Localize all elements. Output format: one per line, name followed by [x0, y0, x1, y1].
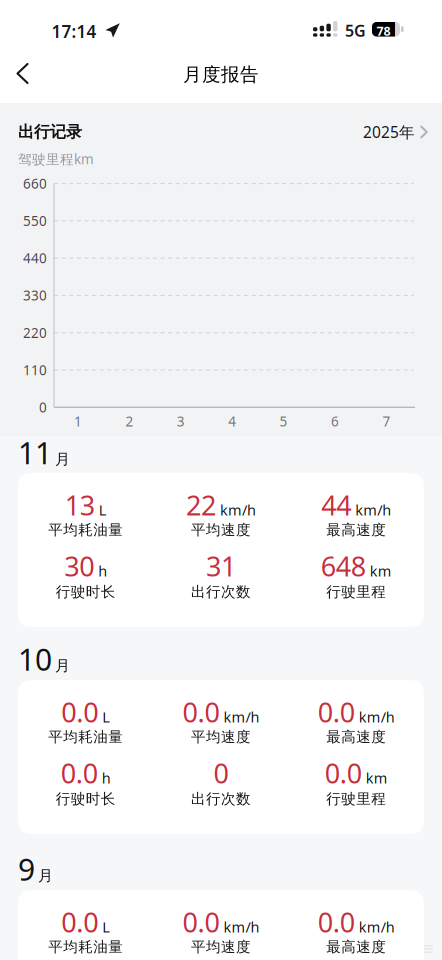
staticText: 17:14: [51, 20, 96, 43]
staticText: 648: [321, 548, 366, 584]
staticText: 1: [74, 412, 82, 430]
staticText: 330: [23, 286, 47, 304]
staticText: h: [102, 768, 111, 787]
staticText: 行驶时长: [56, 583, 116, 601]
staticText: 0.0: [61, 694, 98, 730]
staticText: L: [102, 917, 110, 936]
staticText: 220: [23, 324, 47, 342]
staticText: km/h: [359, 707, 395, 726]
staticText: 0: [39, 398, 47, 416]
staticText: 0.0: [182, 904, 219, 940]
staticText: 最高速度: [326, 728, 386, 746]
staticText: 月: [38, 866, 53, 885]
staticText: km/h: [359, 917, 395, 936]
staticText: km/h: [355, 500, 391, 519]
staticText: 驾驶里程km: [18, 150, 94, 168]
staticText: 0: [213, 755, 228, 791]
button[interactable]: Year selector: [363, 122, 428, 142]
staticText: 出行次数: [191, 790, 251, 808]
staticText: 110: [23, 361, 47, 379]
staticText: 行驶里程: [326, 790, 386, 808]
staticText: km/h: [220, 500, 256, 519]
staticText: km/h: [223, 707, 259, 726]
staticText: 660: [23, 174, 47, 192]
staticText: 9: [18, 849, 35, 889]
staticText: 22: [186, 487, 216, 523]
staticText: km/h: [223, 917, 259, 936]
staticText: 月: [55, 450, 70, 468]
staticText: 2025年: [363, 122, 415, 142]
staticText: 550: [23, 212, 47, 230]
staticText: 5G: [345, 20, 366, 41]
staticText: 最高速度: [326, 938, 386, 956]
staticText: 平均耗油量: [48, 728, 123, 746]
staticText: 5: [280, 412, 288, 430]
staticText: h: [98, 561, 107, 580]
staticText: 平均速度: [191, 728, 251, 746]
staticText: 行驶里程: [326, 583, 386, 601]
staticText: L: [102, 707, 110, 726]
staticText: 0.0: [318, 904, 355, 940]
staticText: 31: [206, 548, 236, 584]
button[interactable]: Back: [0, 52, 43, 101]
staticText: 0.0: [61, 904, 98, 940]
staticText: 6: [331, 412, 339, 430]
staticText: 平均速度: [191, 938, 251, 956]
staticText: 出行记录: [18, 122, 82, 142]
staticText: 440: [23, 249, 47, 267]
staticText: 4: [228, 412, 236, 430]
staticText: 平均耗油量: [48, 938, 123, 956]
staticText: 44: [321, 487, 351, 523]
staticText: 2: [125, 412, 133, 430]
staticText: 最高速度: [326, 521, 386, 539]
staticText: 0.0: [325, 755, 362, 791]
staticText: 0.0: [61, 755, 98, 791]
staticText: km: [366, 768, 388, 787]
staticText: 78: [376, 22, 390, 39]
staticText: km: [370, 561, 392, 580]
staticText: 行驶时长: [56, 790, 116, 808]
staticText: 3: [177, 412, 185, 430]
staticText: 平均耗油量: [48, 521, 123, 539]
staticText: 30: [64, 548, 94, 584]
staticText: L: [99, 500, 107, 519]
staticText: 11: [18, 433, 52, 472]
staticText: 平均速度: [191, 521, 251, 539]
staticText: 13: [65, 487, 95, 523]
staticText: 月度报告: [183, 63, 259, 86]
staticText: 10: [18, 639, 52, 679]
staticText: 出行次数: [191, 583, 251, 601]
button[interactable]: Floating menu: [421, 942, 436, 956]
staticText: 7: [382, 412, 390, 430]
staticText: 月: [55, 656, 70, 675]
staticText: 0.0: [182, 694, 219, 730]
staticText: 0.0: [318, 694, 355, 730]
